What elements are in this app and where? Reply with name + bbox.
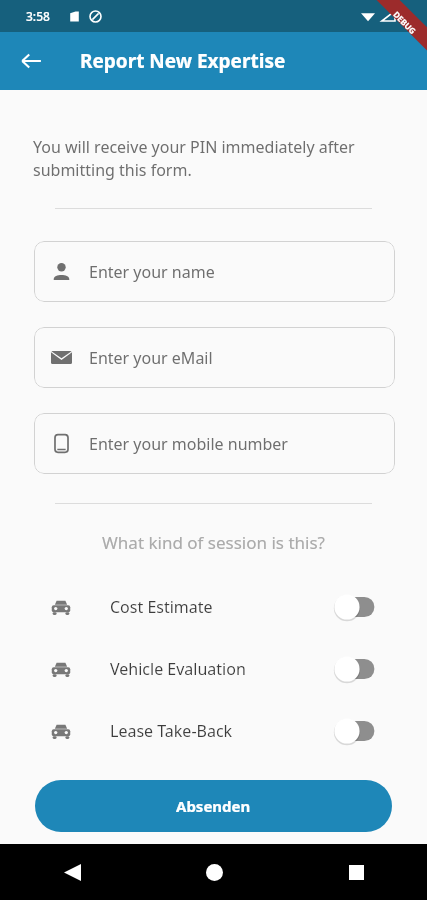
staticText: Enter your eMail	[89, 347, 213, 369]
button[interactable]: Toggle	[333, 593, 379, 621]
button[interactable]: Recent apps	[332, 848, 380, 896]
staticText: You will receive your PIN immediately af…	[33, 136, 399, 181]
staticText: Vehicle Evaluation	[110, 658, 333, 680]
staticText: Enter your name	[89, 261, 215, 283]
button[interactable]: Back	[10, 40, 52, 82]
staticText: What kind of session is this?	[0, 531, 427, 554]
button[interactable]: Toggle	[333, 717, 379, 745]
button[interactable]: Absenden	[35, 780, 392, 832]
staticText: Absenden	[176, 796, 251, 816]
button[interactable]: Home	[190, 848, 238, 896]
button[interactable]: Back	[48, 848, 96, 896]
button[interactable]: Enter your name	[34, 241, 395, 302]
button[interactable]: Enter your mobile number	[34, 413, 395, 474]
staticText: Cost Estimate	[110, 596, 333, 618]
button[interactable]: Cost Estimate	[0, 590, 427, 624]
staticText: Lease Take-Back	[110, 720, 333, 742]
staticText: 3:58	[26, 8, 50, 24]
button[interactable]: Toggle	[333, 655, 379, 683]
staticText: Report New Expertise	[80, 48, 286, 74]
staticText: Enter your mobile number	[89, 433, 288, 455]
staticText: DEBUG	[391, 9, 419, 36]
button[interactable]: Enter your eMail	[34, 327, 395, 388]
button[interactable]: Lease Take-Back	[0, 714, 427, 748]
button[interactable]: Vehicle Evaluation	[0, 652, 427, 686]
